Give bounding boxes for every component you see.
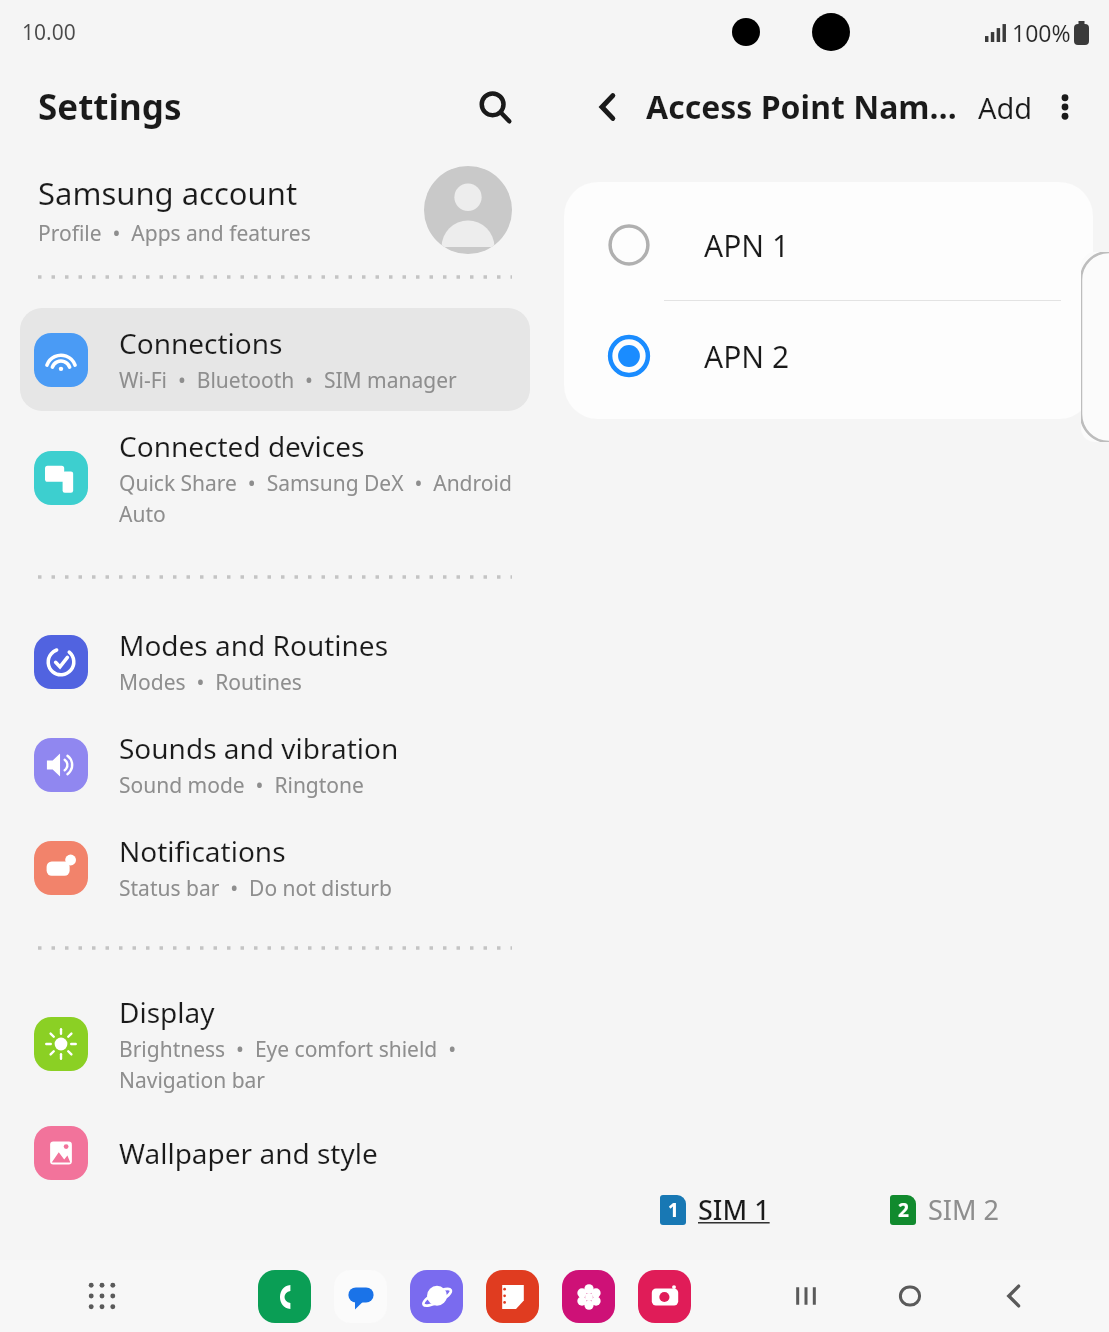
button[interactable]: More options (1041, 83, 1089, 131)
staticText: Samsung account (38, 172, 298, 214)
staticText: Display (119, 993, 215, 1031)
staticText: Add (978, 88, 1033, 127)
staticText: 100% (1012, 17, 1071, 48)
staticText: Profile • Apps and features (38, 219, 311, 248)
button[interactable]: Samsung account (0, 150, 550, 270)
staticText: Modes • Routines (119, 668, 302, 697)
button[interactable]: Modes and Routines (20, 610, 530, 713)
button[interactable]: Back (584, 83, 632, 131)
staticText: Settings (38, 83, 182, 131)
button[interactable]: APN 1 (564, 190, 1093, 300)
staticText: SIM 2 (928, 1191, 999, 1228)
button[interactable]: Camera (638, 1270, 691, 1323)
button[interactable]: Sounds and vibration (20, 713, 530, 816)
button[interactable]: Display (20, 977, 530, 1110)
button[interactable]: Recents (781, 1271, 831, 1321)
staticText: Connections (119, 324, 283, 362)
staticText: Quick Share • Samsung DeX • Android Auto (119, 469, 512, 528)
button[interactable]: Messages (334, 1270, 387, 1323)
button[interactable]: Apps (78, 1272, 126, 1320)
staticText: Connected devices (119, 427, 365, 465)
staticText: Wi-Fi • Bluetooth • SIM manager (119, 366, 457, 395)
staticText: Status bar • Do not disturb (119, 874, 392, 903)
button[interactable]: Phone (258, 1270, 311, 1323)
button[interactable]: Internet (410, 1270, 463, 1323)
staticText: Wallpaper and style (119, 1134, 378, 1172)
staticText: APN 2 (704, 336, 790, 377)
staticText: 1 (668, 1197, 679, 1223)
button[interactable]: Edge panel (1081, 252, 1109, 442)
button[interactable]: 2 (880, 1183, 1009, 1236)
staticText: Notifications (119, 832, 286, 870)
button[interactable]: Wallpaper and style (20, 1110, 530, 1196)
button[interactable]: Connected devices (20, 411, 530, 544)
button[interactable]: Add (970, 80, 1041, 135)
button[interactable]: Gallery (562, 1270, 615, 1323)
button[interactable]: Notifications (20, 816, 530, 919)
staticText: Sounds and vibration (119, 729, 399, 767)
button[interactable]: Notes (486, 1270, 539, 1323)
staticText: APN 1 (704, 225, 790, 266)
button[interactable]: Connections (20, 308, 530, 411)
staticText: Modes and Routines (119, 626, 389, 664)
staticText: 10.00 (22, 18, 76, 47)
button[interactable]: 1 (650, 1183, 780, 1236)
button[interactable]: APN 2 (564, 301, 1093, 411)
staticText: SIM 1 (698, 1191, 770, 1228)
button[interactable]: Search (468, 80, 522, 134)
staticText: Access Point Nam… (646, 85, 957, 129)
staticText: Brightness • Eye comfort shield • Naviga… (119, 1035, 457, 1094)
staticText: 2 (898, 1197, 909, 1223)
button[interactable]: Home (885, 1271, 935, 1321)
button[interactable]: Back (989, 1271, 1039, 1321)
staticText: Sound mode • Ringtone (119, 771, 364, 800)
